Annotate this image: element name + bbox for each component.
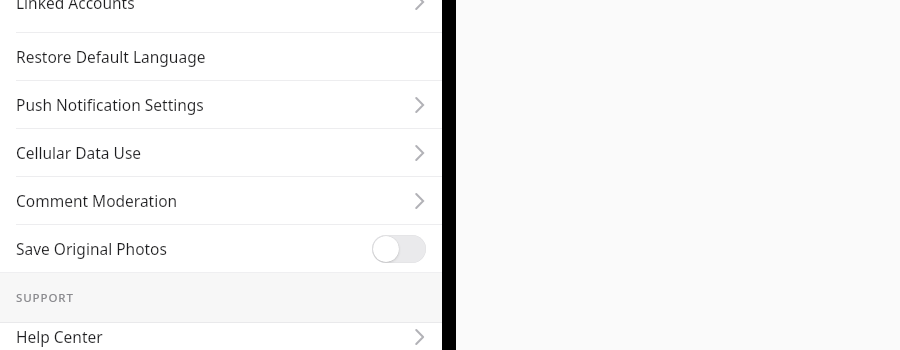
button[interactable]: Save Original Photos xyxy=(0,225,442,272)
button[interactable]: Save Original Photos toggle, off xyxy=(372,235,426,263)
staticText: Cellular Data Use xyxy=(16,142,142,163)
staticText: Restore Default Language xyxy=(16,46,206,67)
button[interactable]: Help Center xyxy=(0,323,442,350)
button[interactable]: Comment Moderation xyxy=(0,177,442,224)
staticText: Help Center xyxy=(16,326,103,347)
staticText: Comment Moderation xyxy=(16,190,178,211)
staticText: Save Original Photos xyxy=(16,238,167,259)
staticText: Push Notification Settings xyxy=(16,94,204,115)
staticText: SUPPORT xyxy=(16,290,74,306)
staticText: Linked Accounts xyxy=(16,0,135,13)
button[interactable]: Cellular Data Use xyxy=(0,129,442,176)
button[interactable]: Push Notification Settings xyxy=(0,81,442,128)
button[interactable]: Restore Default Language xyxy=(0,33,442,80)
button[interactable]: Linked Accounts xyxy=(0,0,442,32)
